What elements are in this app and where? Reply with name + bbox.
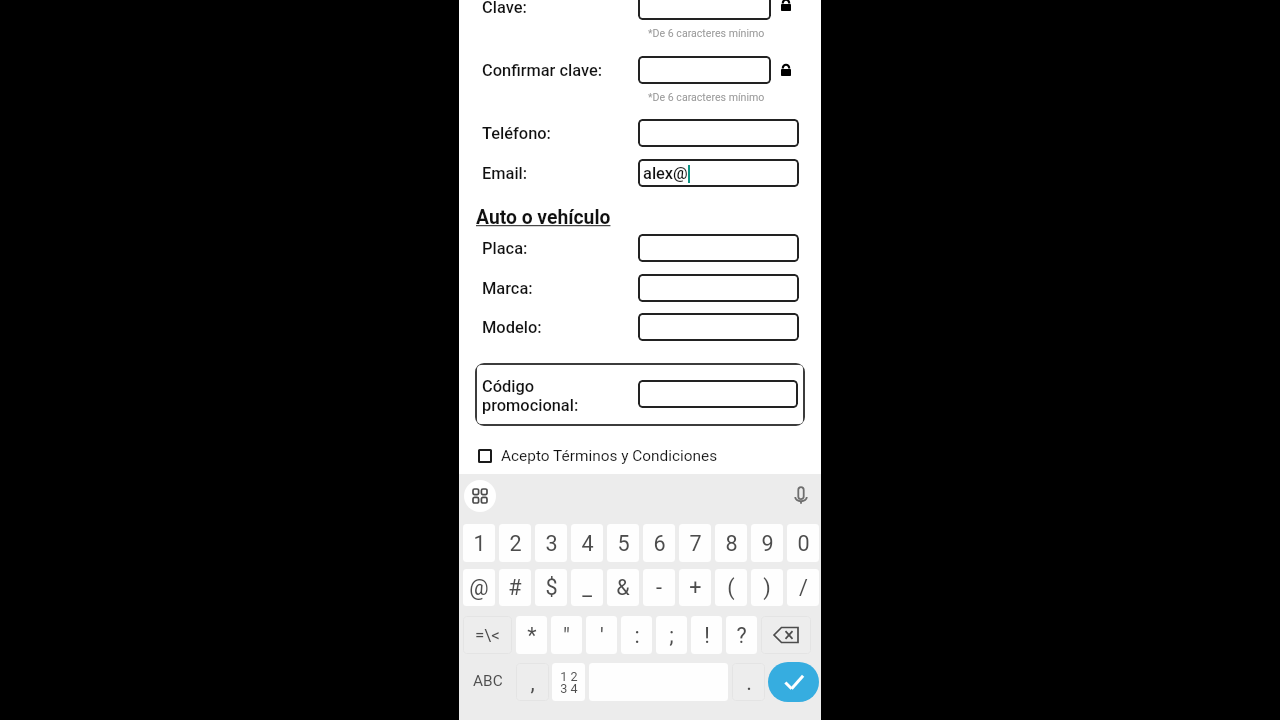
staticText: Modelo:	[482, 318, 542, 337]
staticText: (	[727, 575, 735, 600]
staticText: Marca:	[482, 279, 533, 298]
staticText: Acepto Términos y Condiciones	[501, 447, 718, 465]
staticText: Email:	[482, 164, 528, 183]
button[interactable]: -	[643, 569, 675, 606]
staticText: 2	[509, 531, 522, 556]
button[interactable]: )	[751, 569, 783, 606]
staticText: alex@	[643, 164, 688, 183]
staticText: ABC	[473, 672, 503, 690]
staticText: 4	[581, 531, 594, 556]
button[interactable]: =\<	[463, 616, 512, 654]
button[interactable]: Email	[638, 159, 799, 187]
button[interactable]: _	[571, 569, 603, 606]
staticText: 9	[761, 531, 774, 556]
staticText: 8	[725, 531, 738, 556]
staticText: Clave:	[482, 0, 527, 17]
staticText: Confirmar clave:	[482, 61, 603, 80]
button[interactable]: :	[621, 616, 652, 654]
staticText: Placa:	[482, 239, 528, 258]
button[interactable]: 8	[715, 524, 747, 562]
button[interactable]: 5	[607, 524, 639, 562]
staticText: :	[634, 623, 640, 648]
button[interactable]: !	[691, 616, 722, 654]
staticText: #	[508, 575, 522, 600]
button[interactable]: 7	[679, 524, 711, 562]
button[interactable]: *	[516, 616, 547, 654]
other: Secure field	[781, 0, 791, 11]
staticText: *De 6 caracteres mínimo	[648, 91, 765, 103]
staticText: *	[527, 623, 537, 648]
staticText: =\<	[475, 625, 500, 645]
staticText: Código promocional:	[482, 377, 579, 415]
button[interactable]: Acepto Términos y Condiciones	[473, 444, 773, 468]
staticText: ?	[736, 623, 747, 648]
button[interactable]: Marca	[638, 274, 799, 302]
button[interactable]: Modelo	[638, 313, 799, 341]
button[interactable]: $	[535, 569, 567, 606]
button[interactable]: 0	[787, 524, 819, 562]
staticText: "	[563, 623, 570, 648]
button[interactable]: Confirmar clave	[638, 56, 771, 84]
staticText: 7	[689, 531, 702, 556]
button[interactable]: Teléfono	[638, 119, 799, 147]
button[interactable]: '	[586, 616, 617, 654]
staticText: ;	[669, 623, 674, 648]
staticText: .	[746, 670, 752, 695]
staticText: +	[689, 575, 702, 600]
staticText: _	[582, 575, 592, 600]
button[interactable]: 1	[463, 524, 495, 562]
button[interactable]: 3	[535, 524, 567, 562]
button[interactable]: 1 2 3 4	[552, 663, 585, 701]
button[interactable]: Código promocional:	[475, 363, 805, 426]
staticText: @	[469, 575, 489, 600]
button[interactable]: Keyboard switcher	[464, 480, 496, 512]
staticText: !	[704, 623, 710, 648]
button[interactable]: ,	[516, 663, 549, 701]
staticText: 5	[617, 531, 630, 556]
button[interactable]: (	[715, 569, 747, 606]
staticText: -	[656, 575, 662, 600]
button[interactable]: Voice input	[791, 483, 811, 507]
button[interactable]: Backspace	[761, 616, 811, 654]
button[interactable]: +	[679, 569, 711, 606]
staticText: 1	[473, 531, 486, 556]
staticText: '	[600, 623, 604, 648]
button[interactable]: &	[607, 569, 639, 606]
button[interactable]: "	[551, 616, 582, 654]
staticText: 3	[545, 531, 558, 556]
button[interactable]: @	[463, 569, 495, 606]
button[interactable]: Clave	[638, 0, 771, 20]
staticText: Auto o vehículo	[476, 206, 611, 229]
staticText: *De 6 caracteres mínimo	[648, 27, 765, 39]
button[interactable]: 2	[499, 524, 531, 562]
button[interactable]: #	[499, 569, 531, 606]
button[interactable]: ?	[726, 616, 757, 654]
staticText: $	[545, 575, 558, 600]
button[interactable]: 9	[751, 524, 783, 562]
staticText: &	[616, 575, 630, 600]
staticText: 0	[797, 531, 810, 556]
other: Secure field	[781, 64, 791, 76]
button[interactable]: Done	[768, 662, 819, 702]
button[interactable]: /	[787, 569, 819, 606]
button[interactable]: Placa	[638, 234, 799, 262]
button[interactable]: 6	[643, 524, 675, 562]
staticText: 6	[653, 531, 666, 556]
button[interactable]: ABC	[462, 662, 514, 702]
staticText: ,	[530, 670, 535, 695]
button[interactable]: ;	[656, 616, 687, 654]
staticText: /	[799, 575, 808, 600]
staticText: )	[763, 575, 771, 600]
button[interactable]: .	[732, 663, 765, 701]
staticText: 1 2 3 4	[560, 669, 578, 696]
staticText: Teléfono:	[482, 124, 551, 143]
button[interactable]: Código promocional	[638, 380, 798, 408]
button[interactable]: 4	[571, 524, 603, 562]
